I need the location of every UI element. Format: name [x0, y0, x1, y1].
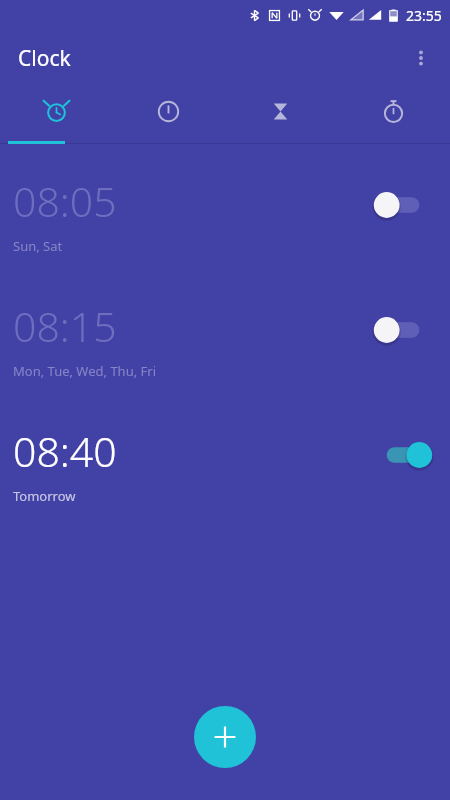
staticText: Mon, Tue, Wed, Thu, Fri: [13, 362, 157, 380]
button[interactable]: Toggle 08:40 alarm: [372, 433, 434, 477]
button[interactable]: Timer: [224, 86, 337, 144]
button[interactable]: Stopwatch: [337, 86, 450, 144]
staticText: 08:40: [13, 423, 117, 479]
button[interactable]: Clock: [112, 86, 224, 144]
staticText: Clock: [18, 44, 71, 73]
button[interactable]: Add alarm: [194, 706, 256, 768]
button[interactable]: More options: [397, 34, 445, 82]
staticText: Sun, Sat: [13, 237, 63, 255]
button[interactable]: 08:15: [0, 290, 450, 415]
button[interactable]: Toggle 08:05 alarm: [372, 183, 434, 227]
staticText: 23:55: [406, 6, 442, 25]
button[interactable]: 08:40: [0, 415, 450, 540]
button[interactable]: Alarms: [0, 86, 112, 144]
staticText: Tomorrow: [13, 487, 76, 505]
button[interactable]: Toggle 08:15 alarm: [372, 308, 434, 352]
button[interactable]: 08:05: [0, 165, 450, 290]
staticText: 08:05: [13, 173, 117, 229]
staticText: 08:15: [13, 298, 117, 354]
